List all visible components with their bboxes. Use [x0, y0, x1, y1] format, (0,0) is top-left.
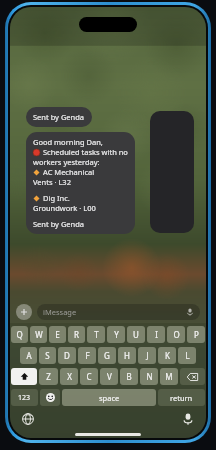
button[interactable]: Change keyboard	[20, 411, 36, 427]
staticText: Groundwork · L00	[33, 203, 96, 213]
button[interactable]: O	[167, 326, 185, 343]
button[interactable]: Y	[107, 326, 125, 343]
staticText: iMessage	[43, 307, 77, 317]
staticText: D	[64, 350, 70, 361]
staticText: 123	[18, 393, 31, 403]
button[interactable]: G	[98, 347, 116, 364]
button[interactable]: F	[78, 347, 96, 364]
button[interactable]: H	[118, 347, 136, 364]
staticText: Sent by Genda	[33, 219, 85, 229]
staticText: Vents · L32	[33, 177, 71, 187]
staticText: F	[85, 350, 90, 361]
button[interactable]: Dictation	[180, 411, 196, 427]
staticText: C	[86, 371, 92, 382]
button[interactable]: Sent by Genda	[26, 107, 92, 127]
button[interactable]: Emoji	[40, 389, 60, 406]
button[interactable]: Shift	[11, 368, 37, 385]
button[interactable]: W	[30, 326, 47, 343]
staticText: H	[124, 350, 130, 361]
button[interactable]: X	[60, 368, 78, 385]
button[interactable]: iMessage	[37, 304, 200, 320]
button[interactable]: return	[158, 389, 205, 406]
button[interactable]: S	[39, 347, 56, 364]
button[interactable]: Backspace	[180, 368, 205, 385]
staticText: Dig Inc.	[43, 193, 70, 203]
button[interactable]: U	[127, 326, 145, 343]
staticText: space	[99, 393, 120, 403]
staticText: Good morning Dan,	[33, 137, 103, 147]
staticText: V	[107, 371, 112, 382]
button[interactable]: Add attachment	[16, 304, 32, 320]
button[interactable]: Z	[39, 368, 58, 385]
staticText: M	[165, 371, 173, 382]
staticText: Y	[114, 329, 119, 340]
button[interactable]: P	[187, 326, 205, 343]
button[interactable]: Q	[11, 326, 28, 343]
staticText: X	[67, 371, 72, 382]
button[interactable]: T	[87, 326, 105, 343]
staticText: R	[74, 329, 79, 340]
button[interactable]: R	[68, 326, 85, 343]
button[interactable]: I	[147, 326, 165, 343]
staticText: K	[165, 350, 170, 361]
staticText: Sent by Genda	[33, 112, 85, 122]
staticText: O	[173, 329, 180, 340]
staticText: E	[55, 329, 60, 340]
button[interactable]: 123	[11, 389, 38, 406]
staticText: S	[45, 350, 50, 361]
staticText: T	[94, 329, 99, 340]
staticText: A	[26, 350, 32, 361]
staticText: P	[194, 329, 199, 340]
staticText: Z	[46, 371, 51, 382]
button[interactable]: D	[58, 347, 76, 364]
button[interactable]: B	[120, 368, 138, 385]
staticText: W	[35, 329, 43, 340]
staticText: Q	[16, 329, 23, 340]
button[interactable]: K	[158, 347, 176, 364]
staticText: B	[126, 371, 132, 382]
button[interactable]: A	[20, 347, 37, 364]
button[interactable]: J	[138, 347, 156, 364]
staticText: return	[170, 393, 193, 403]
staticText: I	[155, 329, 158, 340]
button[interactable]: L	[178, 347, 196, 364]
staticText: N	[146, 371, 153, 382]
staticText: Scheduled tasks with no	[43, 147, 128, 157]
button[interactable]: V	[100, 368, 118, 385]
staticText: U	[133, 329, 139, 340]
button[interactable]: M	[160, 368, 178, 385]
button[interactable]: E	[49, 326, 66, 343]
button[interactable]: C	[80, 368, 98, 385]
staticText: J	[146, 350, 149, 361]
button[interactable]: space	[62, 389, 156, 406]
staticText: L	[185, 350, 190, 361]
staticText: workers yesterday:	[33, 157, 100, 167]
staticText: AC Mechanical	[43, 167, 95, 177]
button[interactable]: N	[140, 368, 158, 385]
button[interactable]: Good morning Dan,	[26, 132, 135, 234]
staticText: G	[104, 350, 110, 361]
